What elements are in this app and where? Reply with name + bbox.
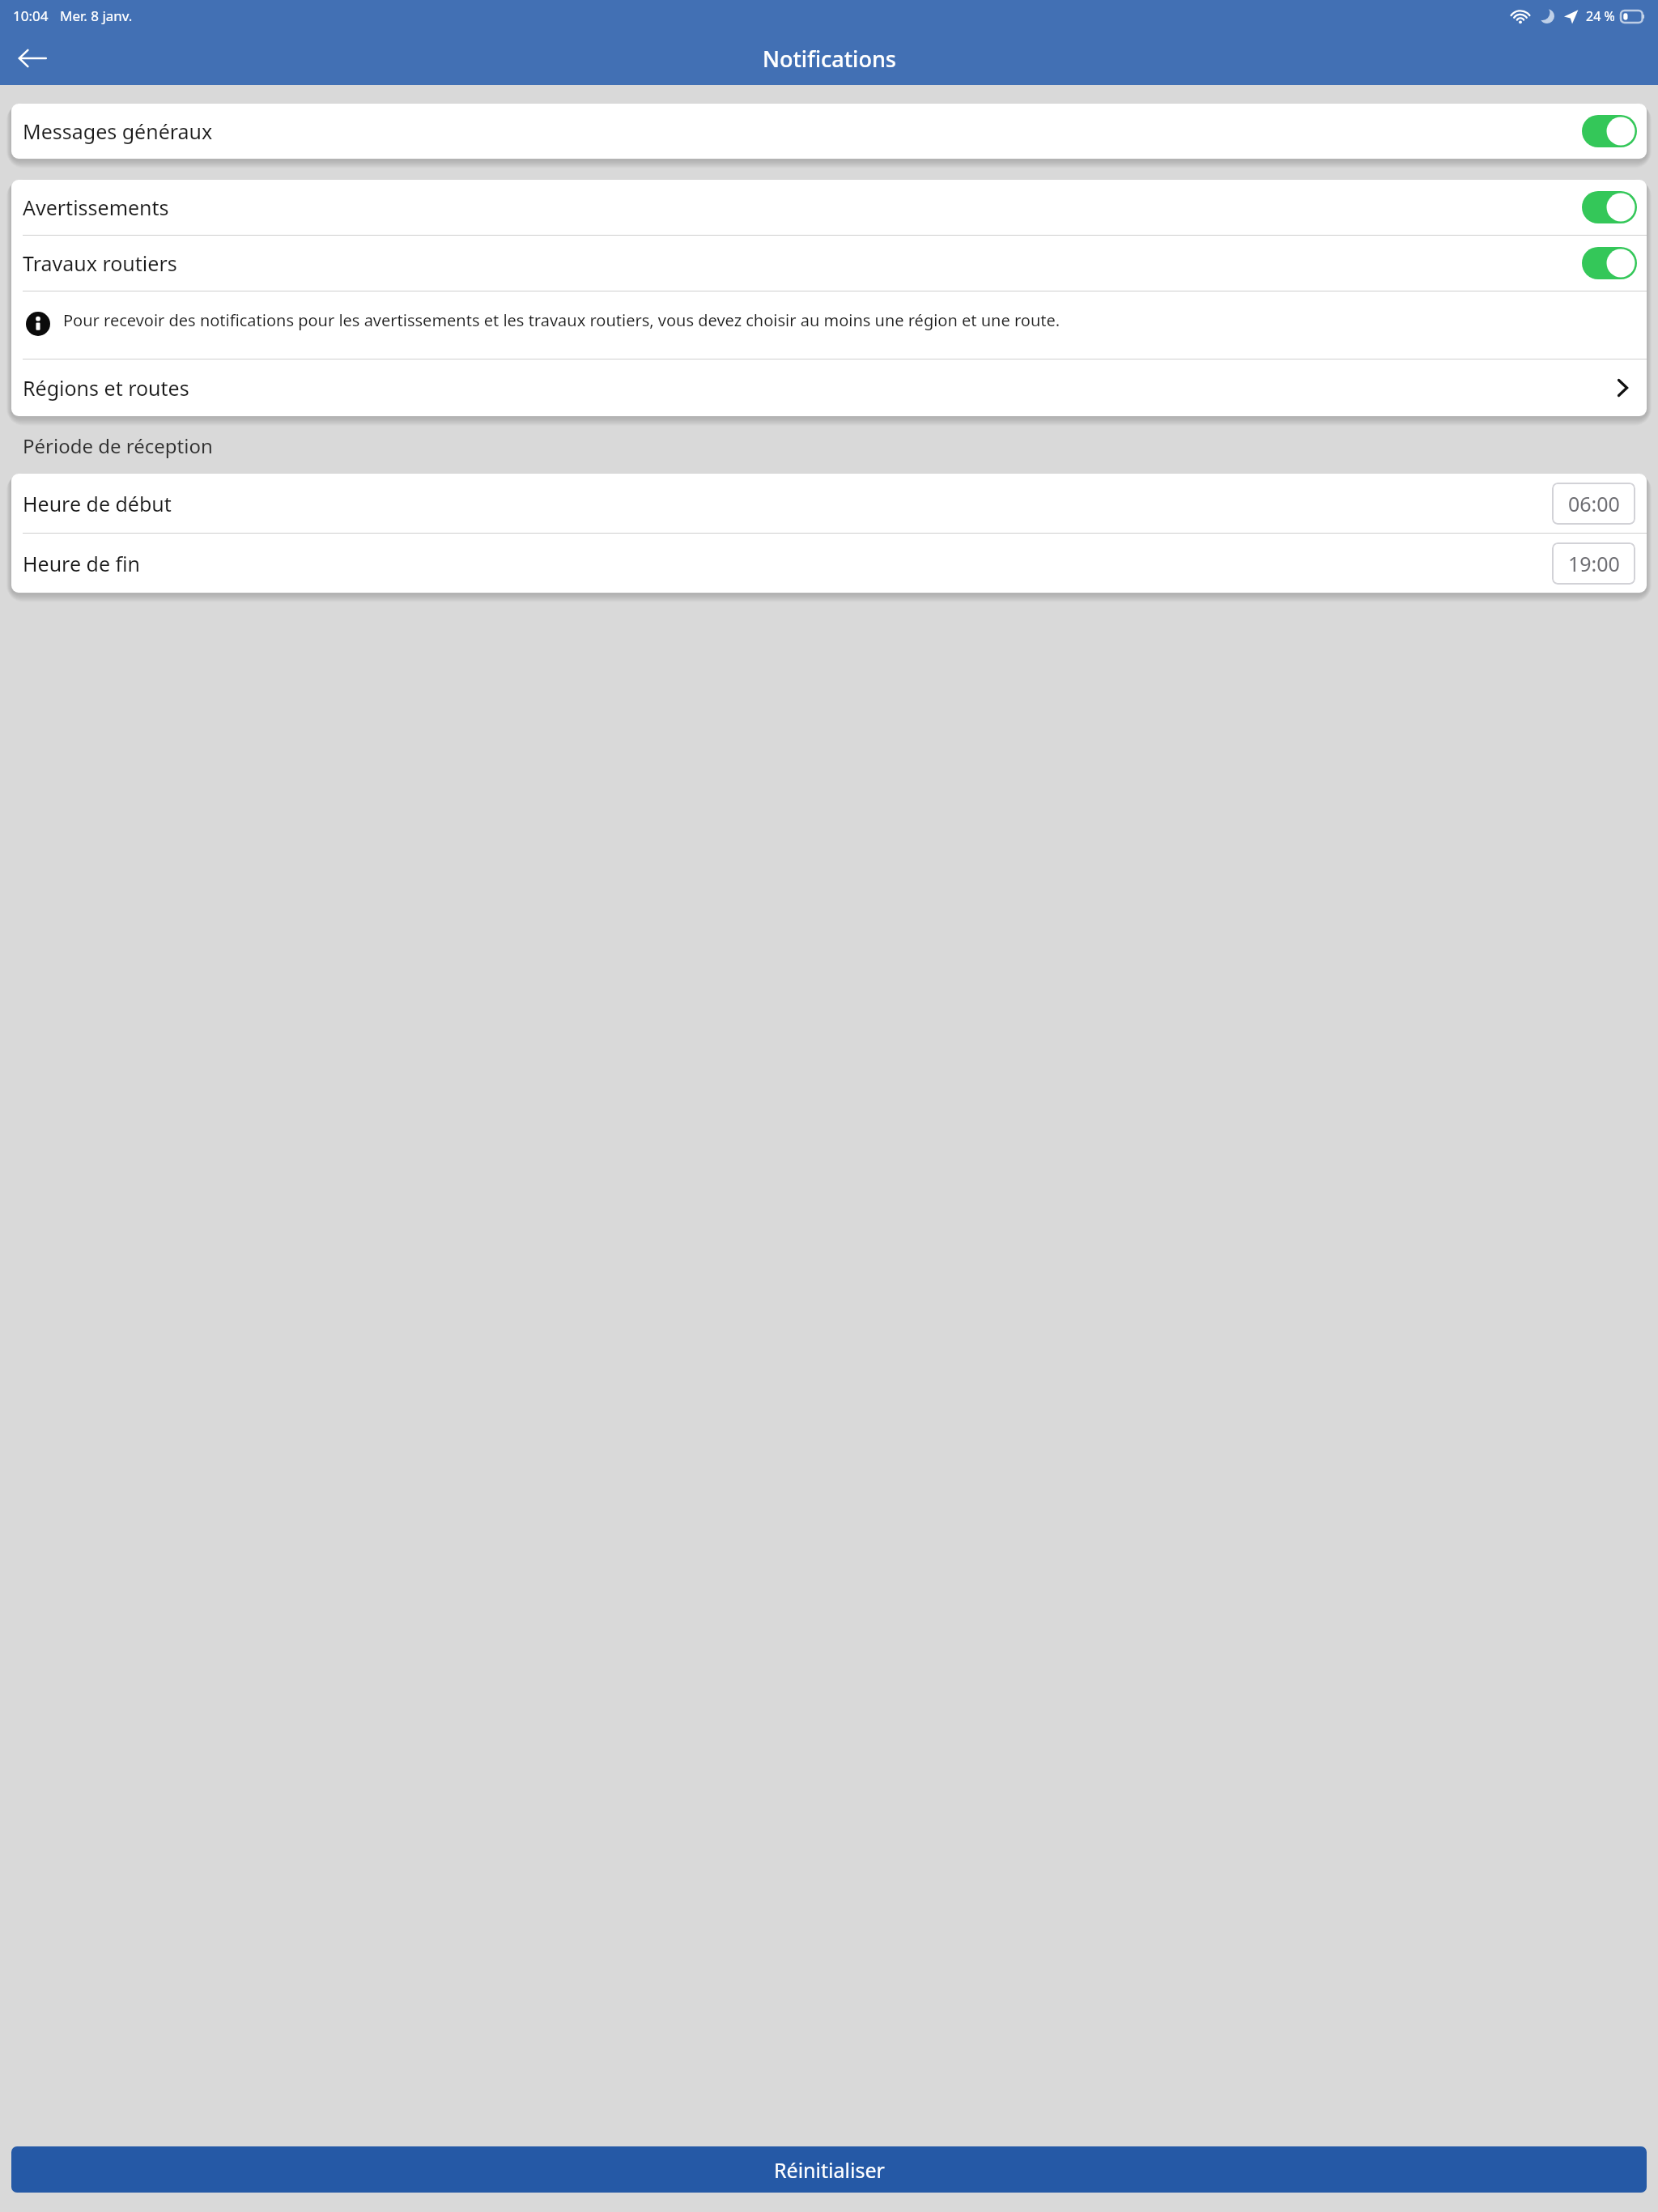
staticText: Avertissements bbox=[23, 194, 169, 221]
staticText: Heure de début bbox=[23, 490, 172, 517]
button[interactable]: Retour bbox=[8, 34, 57, 83]
staticText: Réinitialiser bbox=[774, 2156, 885, 2184]
staticText: 24 % bbox=[1586, 7, 1615, 25]
staticText: Messages généraux bbox=[23, 117, 213, 145]
button[interactable]: Avertissements bbox=[1582, 191, 1637, 223]
button[interactable]: Messages généraux bbox=[11, 104, 1647, 159]
staticText: Heure de fin bbox=[23, 550, 140, 577]
button[interactable]: Heure de fin bbox=[11, 534, 1647, 593]
staticText: 06:00 bbox=[1568, 490, 1620, 517]
staticText: Notifications bbox=[763, 44, 896, 74]
button[interactable]: Messages généraux bbox=[1582, 115, 1637, 147]
staticText: Régions et routes bbox=[23, 374, 189, 402]
button[interactable]: Avertissements bbox=[11, 180, 1647, 235]
staticText: 10:04 bbox=[13, 6, 49, 25]
button[interactable]: Travaux routiers bbox=[1582, 247, 1637, 279]
staticText: Pour recevoir des notifications pour les… bbox=[63, 309, 1061, 331]
staticText: 19:00 bbox=[1568, 550, 1620, 577]
button[interactable]: Régions et routes bbox=[11, 359, 1647, 416]
button[interactable]: Travaux routiers bbox=[11, 236, 1647, 291]
button[interactable]: Heure de début bbox=[11, 474, 1647, 533]
staticText: Travaux routiers bbox=[23, 249, 177, 277]
staticText: Période de réception bbox=[23, 432, 213, 459]
staticText: Mer. 8 janv. bbox=[60, 6, 133, 25]
button[interactable]: Réinitialiser bbox=[11, 2146, 1647, 2193]
